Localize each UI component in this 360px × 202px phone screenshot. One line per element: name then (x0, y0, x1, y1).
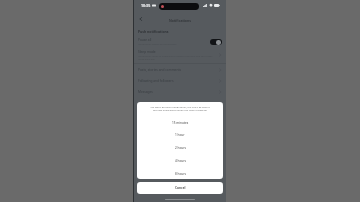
button[interactable]: 8 hours (137, 166, 223, 179)
button[interactable]: Pause all (134, 38, 226, 45)
button[interactable]: 15 minutes (137, 116, 223, 128)
staticText: Push notifications (138, 29, 169, 34)
staticText: 4 hours (175, 159, 186, 163)
staticText: 8 hours (175, 172, 186, 176)
staticText: 2 hours (175, 146, 186, 150)
staticText: Sleep mode (138, 50, 156, 54)
staticText: Pause all (138, 38, 152, 42)
staticText: Posts, stories and comments (138, 68, 218, 72)
staticText: You won't get push notifications, but yo… (150, 105, 210, 111)
button[interactable]: 1 hour (137, 128, 223, 140)
staticText: 10:35 (141, 3, 151, 8)
button[interactable]: Back (136, 14, 146, 24)
staticText: Cancel (175, 186, 186, 190)
button[interactable]: 2 hours (137, 140, 223, 153)
button[interactable]: 4 hours (137, 153, 223, 166)
button[interactable]: Cancel (137, 182, 223, 194)
staticText: Messages (138, 90, 218, 94)
staticText: 1 hour (175, 133, 185, 137)
staticText: Notifications (169, 18, 191, 23)
staticText: Following and followers (138, 79, 218, 83)
staticText: 15 minutes (172, 121, 189, 125)
